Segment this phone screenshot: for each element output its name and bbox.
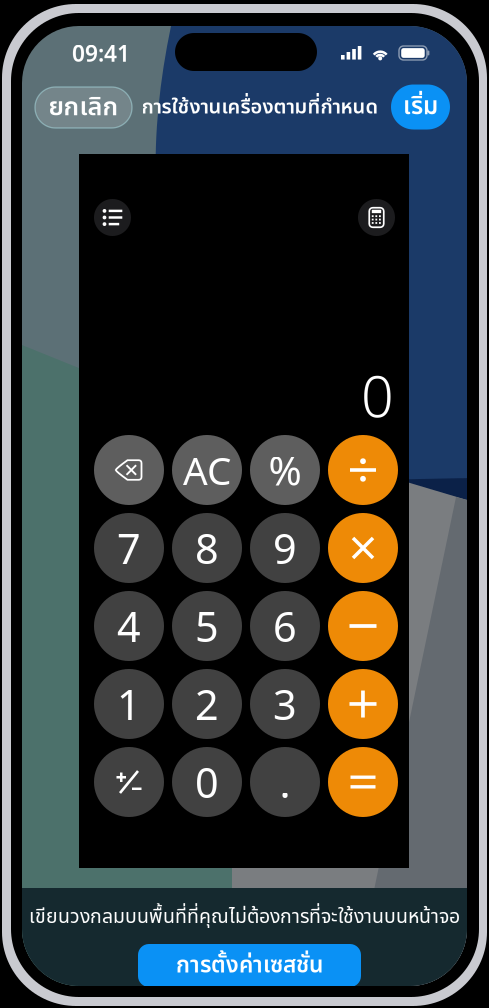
button[interactable]: History <box>94 199 131 236</box>
button[interactable]: . <box>250 747 320 817</box>
staticText: 3 <box>273 677 297 731</box>
staticText: เริ่ม <box>403 89 438 125</box>
staticText: 09:41 <box>72 38 130 68</box>
button[interactable]: 9 <box>250 513 320 583</box>
button[interactable]: AC <box>172 435 242 505</box>
staticText: 8 <box>195 521 219 575</box>
button[interactable]: 6 <box>250 591 320 661</box>
button[interactable]: เริ่ม <box>391 84 450 129</box>
button[interactable]: การตั้งค่าเซสชั่น <box>138 944 361 987</box>
button[interactable]: 3 <box>250 669 320 739</box>
button[interactable]: 1 <box>94 669 164 739</box>
button[interactable]: Toggle sign <box>94 747 164 817</box>
staticText: 5 <box>195 599 219 653</box>
button[interactable]: Multiply <box>328 513 398 583</box>
staticText: . <box>279 755 290 809</box>
staticText: % <box>268 443 301 496</box>
button[interactable]: 2 <box>172 669 242 739</box>
staticText: เขียนวงกลมบนพื้นที่ที่คุณไม่ต้องการที่จะ… <box>29 902 460 932</box>
staticText: ยกเลิก <box>48 88 118 127</box>
button[interactable]: 7 <box>94 513 164 583</box>
staticText: 6 <box>273 599 297 653</box>
staticText: การตั้งค่าเซสชั่น <box>176 948 323 983</box>
staticText: 0 <box>361 357 394 433</box>
button[interactable]: Subtract <box>328 591 398 661</box>
staticText: 2 <box>195 677 219 731</box>
button[interactable]: % <box>250 435 320 505</box>
staticText: 4 <box>117 599 141 653</box>
button[interactable]: 8 <box>172 513 242 583</box>
button[interactable]: Calculator mode <box>358 199 395 236</box>
button[interactable]: 5 <box>172 591 242 661</box>
staticText: 1 <box>117 677 141 731</box>
button[interactable]: 0 <box>172 747 242 817</box>
staticText: การใช้งานเครื่องตามที่กำหนด <box>141 92 378 123</box>
button[interactable]: Divide <box>328 435 398 505</box>
button[interactable]: ยกเลิก <box>35 87 132 128</box>
button[interactable]: Add <box>328 669 398 739</box>
staticText: 7 <box>117 521 141 575</box>
button[interactable]: Delete <box>94 435 164 505</box>
button[interactable]: 4 <box>94 591 164 661</box>
staticText: AC <box>183 444 231 496</box>
staticText: 0 <box>195 755 219 809</box>
button[interactable]: Equals <box>328 747 398 817</box>
staticText: 9 <box>273 521 297 575</box>
